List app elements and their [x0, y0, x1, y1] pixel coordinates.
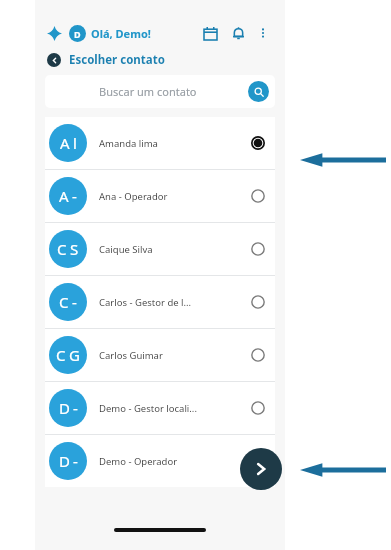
button[interactable]: A [45, 117, 275, 169]
staticText: Demo - Operador [99, 455, 245, 468]
staticText: - [72, 292, 77, 312]
staticText: l [73, 133, 77, 153]
staticText: D [59, 398, 70, 418]
staticText: A [59, 186, 69, 206]
staticText: C [56, 345, 66, 365]
button[interactable]: Search [248, 81, 269, 102]
button[interactable]: Calendar [199, 22, 221, 44]
staticText: Buscar um contato [99, 84, 197, 99]
button[interactable]: More options [253, 23, 273, 43]
staticText: Amanda lima [99, 137, 245, 150]
other: Logo [47, 26, 62, 41]
button[interactable]: Escolher contato [47, 52, 285, 68]
staticText: A [60, 133, 70, 153]
staticText: C [57, 239, 67, 259]
button[interactable]: C [45, 223, 275, 275]
button[interactable]: A [45, 170, 275, 222]
staticText: - [73, 398, 78, 418]
button[interactable]: Next [240, 448, 282, 490]
button[interactable]: C [45, 329, 275, 381]
button[interactable]: Notifications [227, 22, 249, 44]
staticText: D [74, 28, 81, 40]
button[interactable]: C [45, 276, 275, 328]
button[interactable]: D [45, 435, 275, 487]
staticText: - [73, 451, 78, 471]
staticText: S [70, 239, 79, 259]
staticText: Demo - Gestor locali... [99, 402, 245, 415]
staticText: D [59, 451, 70, 471]
staticText: C [59, 292, 69, 312]
staticText: Ana - Operador [99, 190, 245, 203]
staticText: G [69, 345, 80, 365]
staticText: Carlos - Gestor de l... [99, 296, 245, 309]
button[interactable]: D [45, 382, 275, 434]
staticText: Carlos Guimar [99, 349, 245, 362]
staticText: Escolher contato [69, 52, 165, 68]
staticText: Olá, Demo! [91, 26, 151, 41]
staticText: Caique Silva [99, 243, 245, 256]
staticText: - [72, 186, 77, 206]
